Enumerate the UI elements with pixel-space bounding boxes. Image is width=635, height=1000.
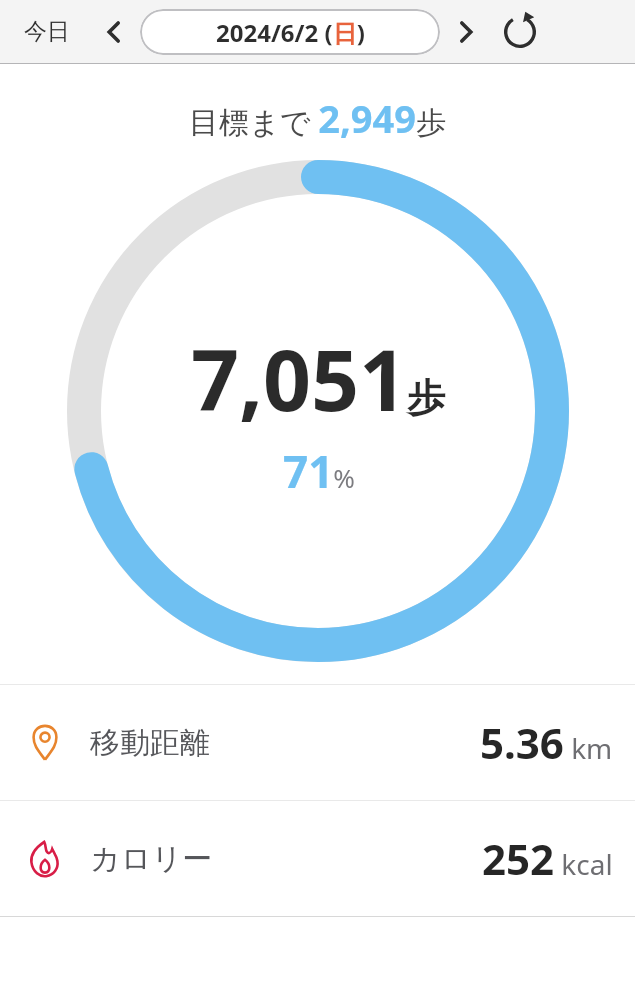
staticText: カロリー <box>90 840 213 878</box>
staticText: 71% <box>283 441 355 501</box>
staticText: 2024/6/2 (日) <box>216 16 365 49</box>
button[interactable]: 更新 <box>494 6 546 58</box>
staticText: 今日 <box>24 17 70 46</box>
button[interactable]: 今日 <box>16 11 78 52</box>
button[interactable]: 前の日 <box>92 10 136 54</box>
button[interactable]: 次の日 <box>444 10 488 54</box>
staticText: 7,051歩 <box>191 321 446 435</box>
button[interactable]: 移動距離 <box>0 685 635 800</box>
staticText: 5.36 km <box>480 714 613 771</box>
staticText: 252 kcal <box>482 830 613 887</box>
button[interactable]: カロリー <box>0 801 635 916</box>
staticText: 移動距離 <box>90 724 210 762</box>
staticText: 目標まで 2,949歩 <box>189 92 446 144</box>
button[interactable]: 2024/6/2 (日) <box>140 9 440 55</box>
